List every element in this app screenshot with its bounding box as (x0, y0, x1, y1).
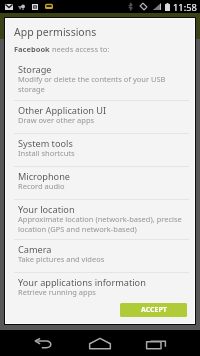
button[interactable]: Back (25, 330, 61, 356)
staticText: Your applications information (18, 276, 146, 289)
staticText: needs access to: (50, 44, 110, 54)
staticText: Other Application UI (18, 104, 107, 117)
staticText: Your location (18, 203, 75, 216)
staticText: Approximate location (network-based), pr… (18, 214, 188, 234)
staticText: App permissions (14, 25, 97, 39)
button[interactable]: Other Application UI (6, 100, 194, 133)
button[interactable]: Recent apps (138, 330, 174, 356)
staticText: System tools (18, 137, 73, 150)
staticText: Take pictures and videos (18, 254, 188, 264)
staticText: 11:58 (173, 1, 197, 14)
staticText: Microphone (18, 170, 71, 183)
button[interactable]: ACCEPT (120, 303, 187, 317)
button[interactable]: Camera (6, 239, 194, 272)
button[interactable]: Microphone (6, 166, 194, 199)
staticText: Modify or delete the contents of your US… (18, 74, 188, 94)
staticText: Retrieve running apps (18, 287, 188, 297)
button[interactable]: Home (82, 330, 118, 356)
button[interactable]: Storage (6, 59, 194, 100)
staticText: Storage (18, 63, 52, 76)
button[interactable]: Your applications information (6, 272, 194, 305)
staticText: Draw over other apps (18, 115, 188, 125)
button[interactable]: System tools (6, 133, 194, 166)
staticText: Record audio (18, 181, 188, 191)
staticText: Facebook (14, 44, 50, 54)
button[interactable]: Your location (6, 199, 194, 239)
staticText: ACCEPT (141, 305, 167, 315)
staticText: Camera (18, 243, 52, 256)
staticText: Install shortcuts (18, 148, 188, 158)
